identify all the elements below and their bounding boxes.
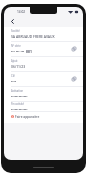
staticText: ••• ••• ••• — [11, 49, 26, 54]
staticText: ••••••••••••• — [11, 94, 28, 99]
staticText: SA ABRUAUD FRERE AVAUX — [11, 34, 55, 39]
staticText: •••• — [11, 79, 17, 84]
staticText: Clé — [11, 74, 15, 78]
button[interactable]: N° série — [4, 42, 83, 56]
staticText: ••••••••••••• — [11, 107, 28, 111]
staticText: Faire apparaitre — [15, 115, 40, 119]
button[interactable]: Ajout — [4, 57, 83, 71]
staticText: Ajout — [11, 59, 18, 63]
button[interactable]: Société — [4, 27, 83, 41]
staticText: Société — [11, 29, 20, 33]
staticText: 14:02 — [17, 10, 26, 14]
button[interactable]: Fin activité — [4, 102, 83, 111]
staticText: 881 — [26, 49, 32, 54]
staticText: Fin activité — [11, 102, 24, 106]
button[interactable]: Faire apparaitre — [4, 112, 83, 121]
button[interactable]: Activation — [4, 87, 83, 101]
staticText: N° série — [11, 44, 21, 48]
button[interactable]: Clé — [4, 72, 83, 86]
button[interactable]: Copy — [70, 45, 78, 53]
staticText: 06/11/23 — [11, 64, 26, 69]
button[interactable]: Back — [7, 16, 17, 26]
staticText: Activation — [11, 89, 24, 93]
button[interactable]: Copy — [70, 75, 78, 83]
